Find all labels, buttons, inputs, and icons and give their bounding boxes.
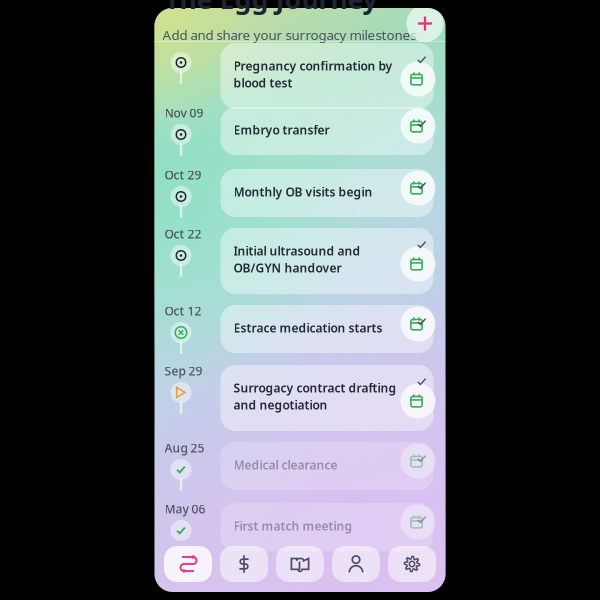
button[interactable]: Schedule	[400, 108, 435, 143]
button[interactable]: Schedule	[400, 246, 435, 281]
staticText: Medical clearance	[233, 457, 337, 473]
button[interactable]: Schedule	[400, 306, 435, 341]
button[interactable]: Budget	[220, 546, 268, 582]
staticText: Monthly OB visits begin	[233, 184, 372, 200]
staticText: Embryo transfer	[233, 122, 329, 138]
staticText: blood test	[233, 75, 292, 91]
staticText: Oct 22	[164, 226, 201, 242]
button[interactable]: Embryo transfer	[220, 107, 433, 155]
button[interactable]: Pregnancy confirmation by	[220, 43, 433, 109]
button[interactable]: Profile	[332, 546, 380, 582]
button[interactable]: Journey	[164, 546, 212, 582]
staticText: Initial ultrasound and	[233, 243, 360, 259]
staticText: Pregnancy confirmation by	[233, 58, 392, 74]
button[interactable]: First match meeting	[220, 503, 433, 551]
staticText: May 06	[164, 501, 205, 517]
staticText: Estrace medication starts	[233, 320, 382, 336]
staticText: Sep 29	[164, 363, 202, 379]
button[interactable]: Settings	[388, 546, 436, 582]
button[interactable]: Schedule	[400, 383, 435, 418]
staticText: Nov 09	[164, 105, 203, 121]
staticText: OB/GYN handover	[233, 260, 341, 276]
button[interactable]: Schedule	[400, 61, 435, 96]
button[interactable]: Schedule	[400, 170, 435, 205]
staticText: Oct 29	[164, 167, 201, 183]
button[interactable]: Estrace medication starts	[220, 305, 433, 353]
staticText: Aug 25	[164, 440, 204, 456]
button[interactable]: Surrogacy contract drafting	[220, 365, 433, 431]
button[interactable]: Monthly OB visits begin	[220, 169, 433, 217]
staticText: The Egg Journey	[164, 0, 377, 16]
button[interactable]: Guide	[276, 546, 324, 582]
button[interactable]: Schedule	[400, 443, 435, 478]
button[interactable]: Medical clearance	[220, 442, 433, 490]
staticText: Add and share your surrogacy milestones	[162, 26, 416, 44]
staticText: Oct 12	[164, 303, 201, 319]
button[interactable]: Initial ultrasound and	[220, 228, 433, 294]
button[interactable]: Add milestone	[406, 5, 443, 42]
staticText: First match meeting	[233, 518, 352, 534]
button[interactable]: Schedule	[400, 504, 435, 539]
staticText: Surrogacy contract drafting	[233, 380, 396, 396]
staticText: and negotiation	[233, 397, 327, 413]
